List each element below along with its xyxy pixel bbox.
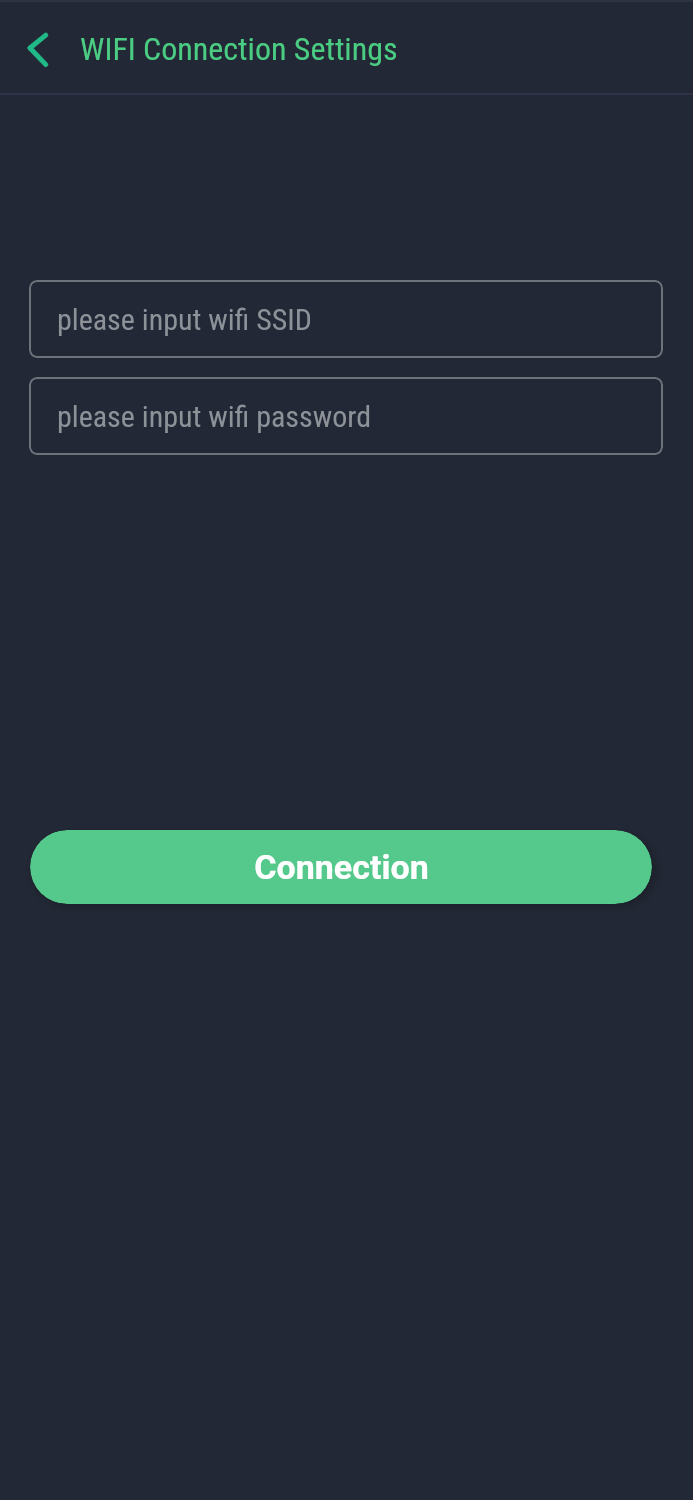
button[interactable]: please input wifi SSID [29, 280, 663, 358]
button[interactable]: please input wifi password [29, 377, 663, 455]
staticText: please input wifi password [57, 399, 372, 434]
staticText: WIFI Connection Settings [80, 30, 398, 68]
button[interactable]: Connection [30, 830, 652, 904]
button[interactable]: Back [8, 16, 70, 78]
staticText: please input wifi SSID [57, 302, 312, 337]
staticText: Connection [254, 847, 429, 887]
